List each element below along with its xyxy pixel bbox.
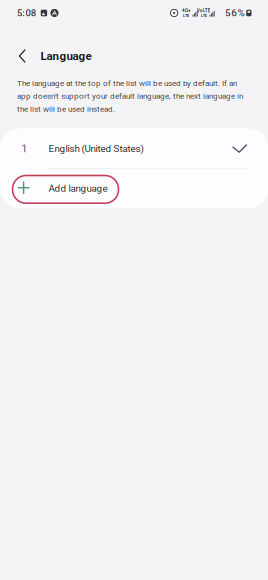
staticText: LTE bbox=[201, 13, 207, 18]
button[interactable]: Add language bbox=[0, 169, 268, 208]
button[interactable]: 1 bbox=[0, 128, 268, 169]
staticText: Language bbox=[40, 49, 91, 63]
staticText: 1 bbox=[21, 142, 27, 155]
staticText: LTE bbox=[183, 13, 189, 18]
staticText: The language at the top of the list will… bbox=[17, 78, 243, 114]
staticText: Add language bbox=[49, 183, 108, 194]
staticText: 4G+ bbox=[182, 8, 190, 13]
staticText: 56% bbox=[225, 7, 244, 19]
button[interactable]: Back bbox=[10, 41, 35, 71]
staticText: VoLTE bbox=[197, 8, 211, 13]
staticText: 5:08 bbox=[17, 7, 36, 19]
staticText: English (United States) bbox=[49, 143, 144, 154]
